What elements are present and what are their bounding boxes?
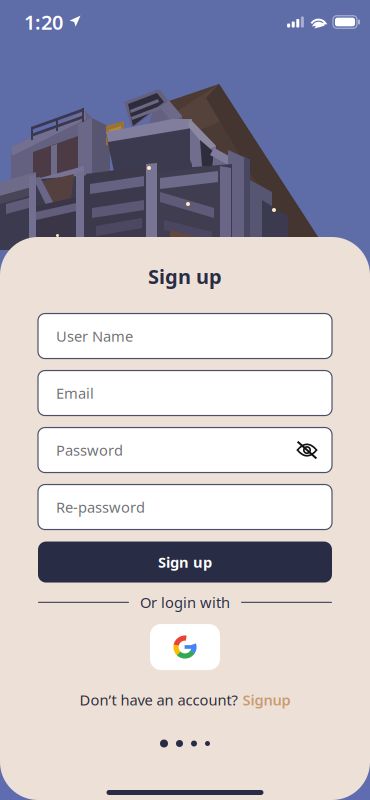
button[interactable]: Re-password	[38, 485, 332, 530]
staticText: Signup	[242, 690, 290, 709]
staticText: Email	[56, 383, 94, 403]
button[interactable]: Sign up with Google	[150, 624, 220, 670]
staticText: 1:20	[24, 9, 63, 35]
staticText: Re-password	[56, 497, 145, 517]
staticText: Sign up	[148, 263, 222, 290]
staticText: Or login with	[140, 593, 230, 612]
staticText: User Name	[56, 326, 133, 346]
button[interactable]: Email	[38, 371, 332, 416]
button[interactable]: User Name	[38, 314, 332, 359]
button[interactable]: Signup	[242, 690, 290, 709]
staticText: Don’t have an account?	[79, 690, 237, 709]
button[interactable]: Sign up	[38, 542, 332, 583]
staticText: Sign up	[158, 552, 212, 572]
staticText: Password	[56, 440, 123, 460]
button[interactable]: Password	[38, 428, 332, 473]
